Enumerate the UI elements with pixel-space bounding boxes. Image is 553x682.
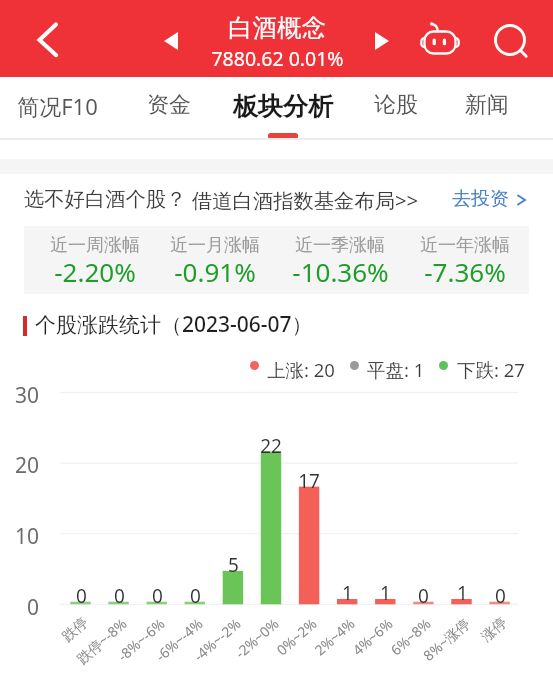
staticText: 22 <box>260 433 282 459</box>
button[interactable]: 论股 <box>340 77 452 138</box>
staticText: 涨停 <box>478 614 511 646</box>
staticText: -7.36% <box>424 254 506 289</box>
staticText: 近一季涨幅 <box>295 234 385 257</box>
button[interactable] <box>427 354 525 380</box>
staticText: 0 <box>190 583 201 609</box>
staticText: 10 <box>15 522 40 551</box>
staticText: 0 <box>76 583 87 609</box>
button[interactable]: Next sector <box>359 18 405 64</box>
staticText: -4%~-2% <box>189 614 244 666</box>
staticText: 平盘: 1 <box>367 357 425 382</box>
staticText: 1 <box>342 580 353 606</box>
staticText: 0 <box>27 593 40 622</box>
staticText: 论股 <box>374 91 418 119</box>
staticText: 板块分析 <box>233 91 333 122</box>
staticText: 借道白酒指数基金布局>> <box>192 186 419 214</box>
staticText: 0 <box>418 583 429 609</box>
button[interactable]: Back <box>24 16 72 64</box>
staticText: -2%~0% <box>231 614 282 662</box>
staticText: -2.20% <box>54 254 136 289</box>
button[interactable]: Previous sector <box>148 18 194 64</box>
staticText: -10.36% <box>292 254 389 289</box>
staticText: 20 <box>15 451 40 480</box>
button[interactable] <box>339 354 426 380</box>
staticText: 4%~6% <box>348 614 396 660</box>
button[interactable] <box>238 354 335 380</box>
staticText: 白酒概念 <box>228 12 326 43</box>
staticText: 1 <box>380 580 391 606</box>
button[interactable]: Search <box>486 16 534 64</box>
staticText: 0 <box>152 583 163 609</box>
staticText: 6%~8% <box>386 614 434 660</box>
staticText: 1 <box>457 580 468 606</box>
staticText: 30 <box>15 381 40 410</box>
button[interactable]: AI assistant <box>416 16 464 64</box>
staticText: 0 <box>114 583 125 609</box>
staticText: 去投资 <box>452 187 509 211</box>
staticText: 简况F10 <box>17 91 98 121</box>
staticText: 8%~涨停 <box>419 614 473 665</box>
staticText: 跌停 <box>59 614 92 646</box>
button[interactable]: 新闻 <box>431 77 543 138</box>
button[interactable]: 资金 <box>113 77 225 138</box>
staticText: 近一周涨幅 <box>50 234 140 257</box>
staticText: 近一月涨幅 <box>170 234 260 257</box>
staticText: 0 <box>495 583 506 609</box>
button[interactable]: 选不好白酒个股？ <box>0 176 553 212</box>
staticText: 17 <box>298 468 320 494</box>
staticText: 上涨: 20 <box>267 357 335 382</box>
staticText: 5 <box>228 552 239 578</box>
staticText: 新闻 <box>465 91 509 119</box>
staticText: -8%~-6% <box>113 614 168 666</box>
staticText: 下跌: 27 <box>457 357 525 382</box>
staticText: 近一年涨幅 <box>420 234 510 257</box>
staticText: 资金 <box>147 91 191 119</box>
staticText: 7880.62 0.01% <box>211 45 344 72</box>
button[interactable]: 简况F10 <box>1 77 113 138</box>
staticText: 2%~4% <box>310 614 358 660</box>
staticText: -6%~-4% <box>151 614 206 666</box>
staticText: 跌停~-8% <box>72 614 130 668</box>
staticText: 个股涨跌统计（2023-06-07） <box>35 310 313 336</box>
staticText: -0.91% <box>174 254 256 289</box>
staticText: 0%~2% <box>272 614 320 660</box>
button[interactable]: 板块分析 <box>227 77 339 138</box>
staticText: 选不好白酒个股？ <box>24 186 187 212</box>
